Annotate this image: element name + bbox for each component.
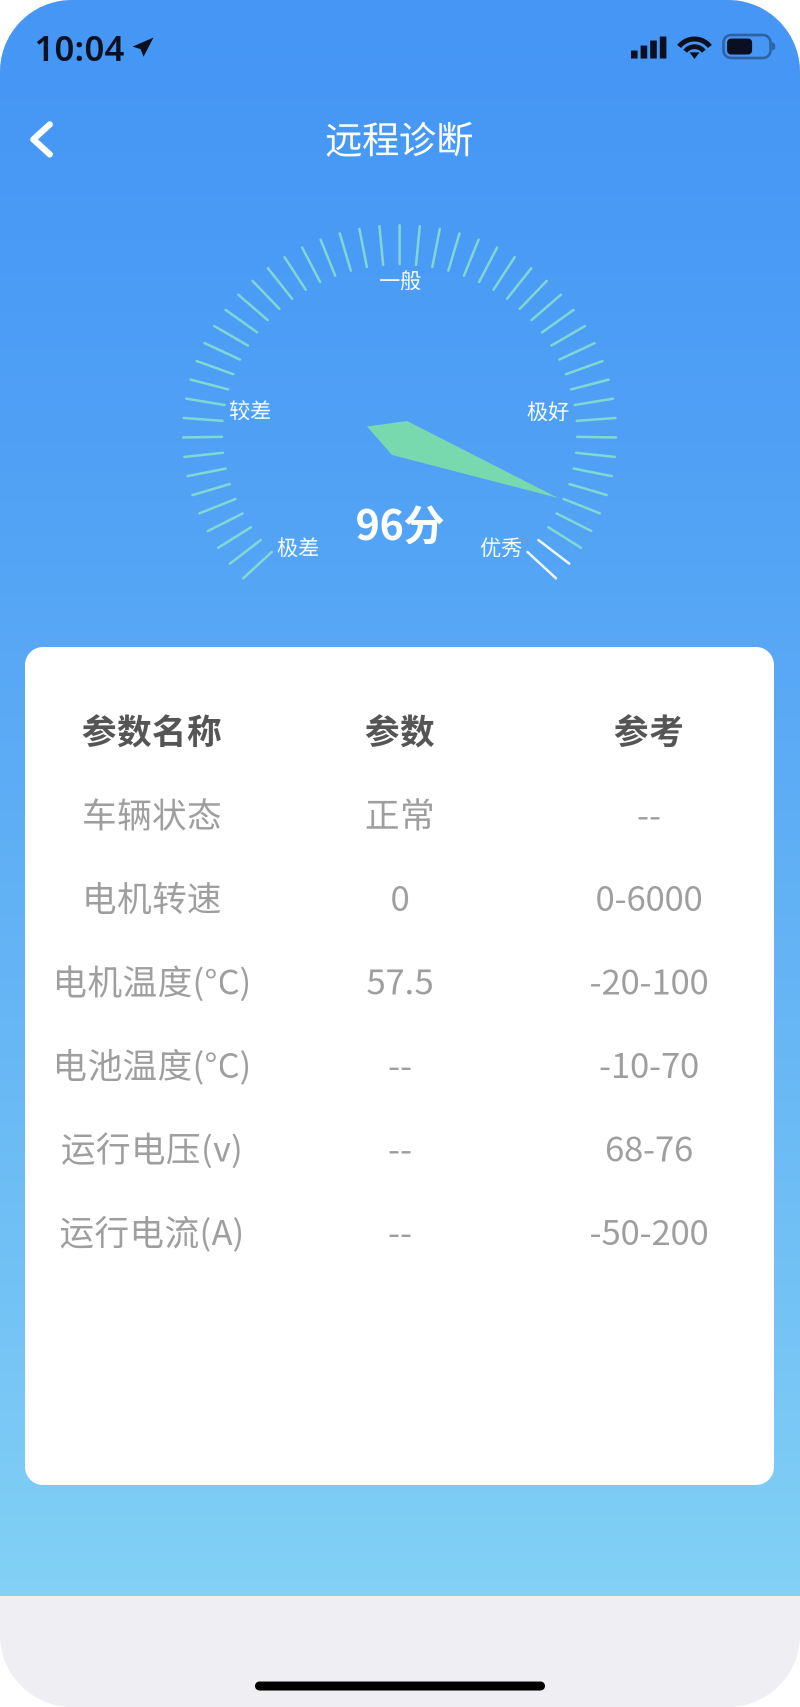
staticText: 参考: [614, 704, 684, 754]
staticText: --: [388, 1205, 412, 1255]
staticText: 电机温度(°C): [52, 954, 251, 1004]
staticText: 极好: [527, 395, 569, 425]
staticText: 参数名称: [82, 704, 222, 754]
staticText: 极差: [277, 531, 319, 561]
staticText: 参数: [365, 704, 435, 754]
staticText: 电池温度(°C): [52, 1038, 251, 1088]
staticText: --: [388, 1121, 412, 1171]
staticText: 10:04: [34, 24, 124, 70]
staticText: 57.5: [366, 954, 433, 1004]
staticText: --: [637, 787, 661, 837]
staticText: 电机转速: [82, 871, 222, 921]
staticText: 车辆状态: [82, 787, 222, 837]
button[interactable]: 返回: [0, 92, 85, 186]
staticText: --: [388, 1038, 412, 1088]
staticText: 运行电压(v): [61, 1121, 243, 1171]
staticText: 0-6000: [595, 871, 702, 921]
staticText: 正常: [365, 787, 435, 837]
staticText: 68-76: [605, 1121, 693, 1171]
staticText: 优秀: [480, 531, 522, 561]
staticText: 较差: [229, 394, 271, 424]
staticText: 96分: [355, 492, 444, 552]
staticText: -20-100: [589, 954, 708, 1004]
staticText: 运行电流(A): [59, 1205, 244, 1255]
staticText: 一般: [379, 264, 421, 294]
staticText: 远程诊断: [325, 110, 473, 164]
staticText: 0: [390, 871, 409, 921]
staticText: -50-200: [589, 1205, 708, 1255]
staticText: -10-70: [599, 1038, 699, 1088]
